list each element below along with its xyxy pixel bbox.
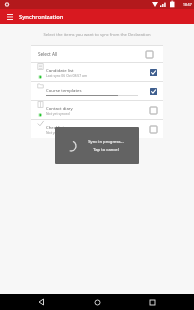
button[interactable]: Open navigation menu [5, 12, 15, 22]
button[interactable]: Unchecked [146, 122, 160, 136]
staticText: Synchronization [19, 13, 64, 21]
button[interactable]: Unchecked [142, 47, 156, 61]
staticText: Checklists [46, 124, 67, 130]
button[interactable]: Checked [146, 65, 160, 79]
staticText: Candidate list [46, 67, 74, 73]
staticText: Select the items you want to sync from t… [0, 32, 194, 38]
staticText: 18:57 [183, 2, 192, 7]
button[interactable]: Candidate list [31, 63, 163, 81]
staticText: Not yet synced [46, 130, 70, 135]
staticText: Not yet synced [46, 111, 70, 116]
staticText: Sync in progress... [88, 139, 124, 145]
button[interactable]: Checklists [31, 120, 163, 138]
staticText: Course templates [46, 87, 82, 93]
button[interactable]: Back [36, 296, 48, 308]
staticText: Select All [38, 51, 58, 57]
button[interactable]: Sync in progress... [55, 127, 139, 164]
button[interactable]: Unchecked [146, 103, 160, 117]
button[interactable]: Recent apps [146, 296, 158, 308]
button[interactable]: Home [91, 296, 103, 308]
staticText: Tap to cancel [93, 147, 119, 153]
button[interactable]: Course templates [31, 82, 163, 100]
button[interactable]: Contact diary [31, 101, 163, 119]
button[interactable]: Select All [31, 46, 163, 62]
staticText: Contact diary [46, 105, 73, 111]
staticText: Last sync 06 Oct 08:57 am [46, 73, 88, 78]
button[interactable]: Checked [146, 84, 160, 98]
